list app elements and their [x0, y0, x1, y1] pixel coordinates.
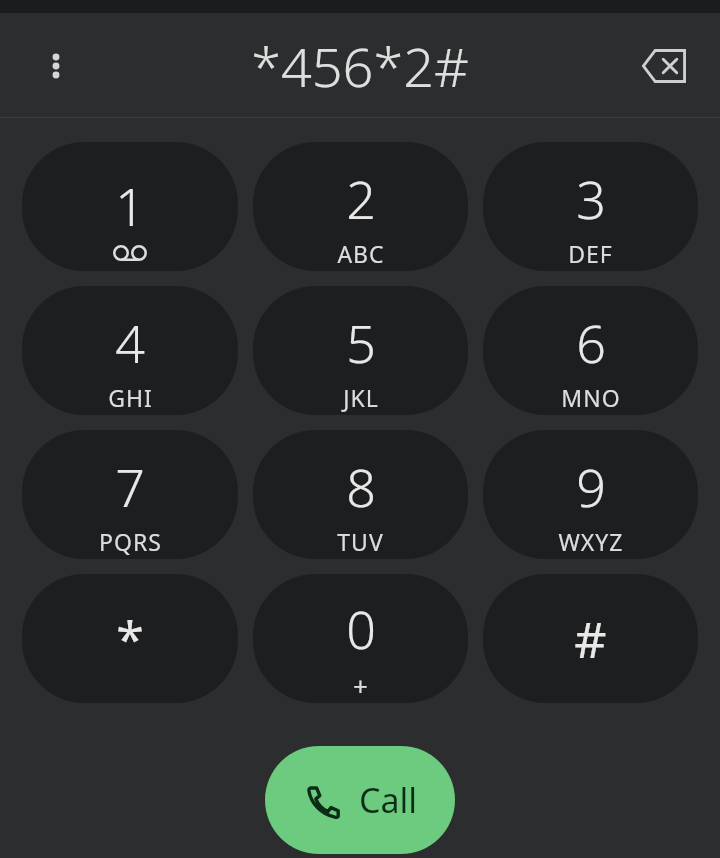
staticText: 5 — [346, 307, 376, 378]
button[interactable]: 5 — [253, 286, 468, 415]
button[interactable]: 7 — [22, 430, 238, 559]
staticText: MNO — [561, 382, 621, 413]
staticText: 1 — [115, 170, 145, 241]
staticText: 0 — [346, 593, 376, 664]
staticText: # — [574, 605, 607, 673]
button[interactable]: 9 — [483, 430, 698, 559]
staticText: TUV — [337, 526, 384, 557]
button[interactable]: 0 — [253, 574, 468, 703]
button[interactable]: * — [22, 574, 238, 703]
staticText: GHI — [108, 382, 153, 413]
button[interactable]: Backspace — [628, 30, 700, 102]
button[interactable]: 4 — [22, 286, 238, 415]
staticText: 9 — [576, 451, 606, 522]
staticText: 6 — [576, 307, 606, 378]
button[interactable]: 2 — [253, 142, 468, 271]
staticText: 4 — [115, 307, 145, 378]
staticText: Call — [359, 777, 418, 823]
staticText: 7 — [115, 451, 145, 522]
staticText: JKL — [343, 382, 379, 413]
staticText: 8 — [346, 451, 376, 522]
button[interactable]: Call — [265, 746, 455, 854]
button[interactable]: 3 — [483, 142, 698, 271]
staticText: DEF — [568, 238, 613, 269]
staticText: 3 — [576, 163, 606, 234]
staticText: 2 — [346, 163, 376, 234]
staticText: PQRS — [99, 526, 162, 557]
button[interactable]: More options — [22, 32, 90, 100]
button[interactable]: 6 — [483, 286, 698, 415]
staticText: + — [353, 668, 369, 703]
button[interactable]: # — [483, 574, 698, 703]
staticText: WXYZ — [558, 526, 624, 557]
button[interactable]: 1 — [22, 142, 238, 271]
button[interactable]: 8 — [253, 430, 468, 559]
staticText: *456*2# — [251, 29, 469, 103]
staticText: * — [116, 605, 144, 673]
staticText: ABC — [337, 238, 385, 269]
